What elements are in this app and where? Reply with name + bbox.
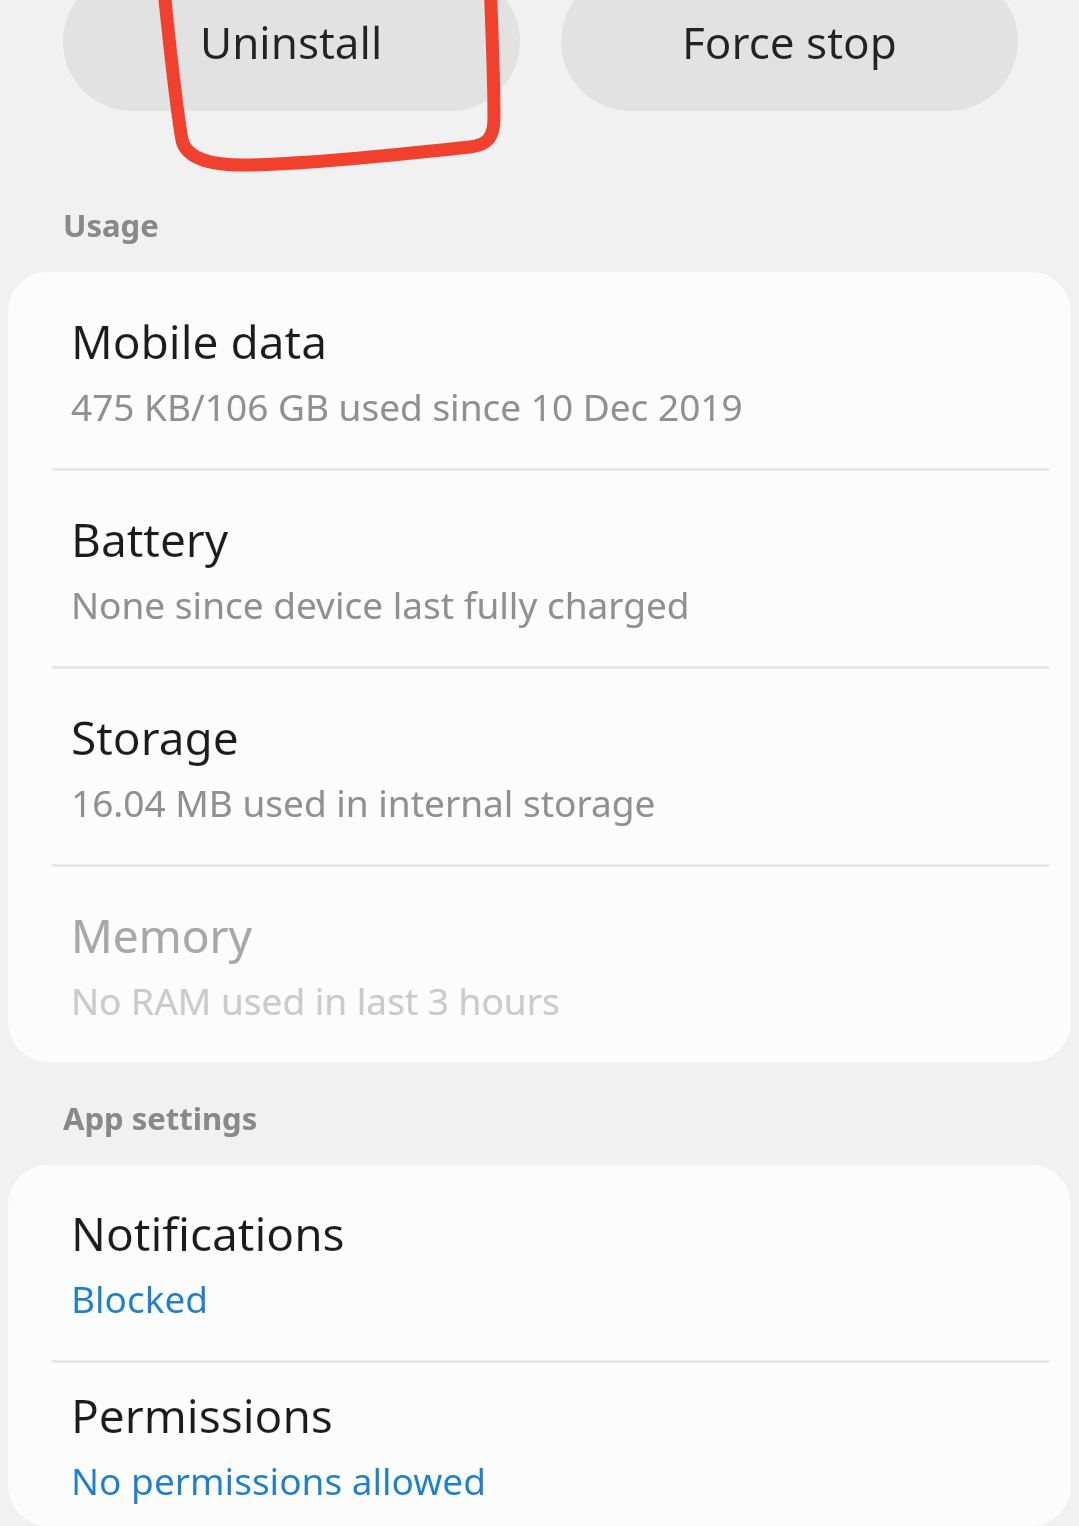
staticText: Permissions [71,1384,333,1447]
staticText: Memory [71,904,252,967]
button[interactable]: Force stop [561,0,1018,111]
staticText: Force stop [682,12,897,72]
button[interactable]: Mobile data [8,272,1071,471]
staticText: No RAM used in last 3 hours [71,975,560,1025]
staticText: No permissions allowed [71,1455,486,1505]
staticText: Blocked [71,1273,209,1323]
staticText: Notifications [71,1202,345,1265]
staticText: None since device last fully charged [71,579,690,629]
button[interactable]: Uninstall [63,0,520,111]
button[interactable]: Battery [8,471,1071,669]
staticText: Storage [71,706,239,769]
staticText: Usage [63,204,159,246]
staticText: Uninstall [200,12,383,72]
staticText: App settings [63,1097,258,1139]
button[interactable]: Notifications [8,1165,1071,1363]
staticText: Mobile data [71,310,327,373]
button[interactable]: Storage [8,669,1071,867]
button[interactable]: Memory [8,867,1071,1062]
staticText: 16.04 MB used in internal storage [71,777,656,827]
staticText: Battery [71,508,229,571]
button[interactable]: Permissions [8,1363,1071,1526]
staticText: 475 KB/106 GB used since 10 Dec 2019 [71,381,743,431]
